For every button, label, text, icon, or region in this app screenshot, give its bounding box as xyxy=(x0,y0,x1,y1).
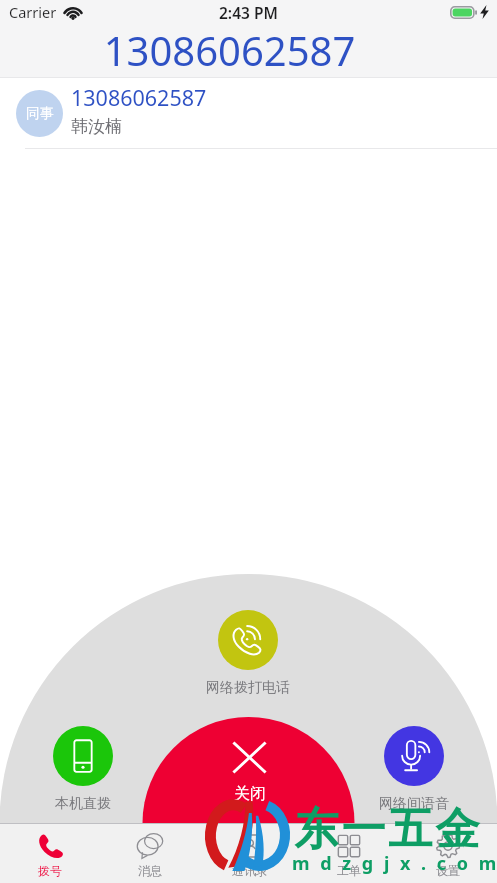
staticText: 设置 xyxy=(436,863,460,878)
staticText: 关闭 xyxy=(234,784,266,804)
button[interactable]: 同事 xyxy=(0,78,497,149)
staticText: 本机直拨 xyxy=(55,795,111,813)
staticText: 13086062587 xyxy=(71,83,207,112)
staticText: 网络间语音 xyxy=(379,795,449,813)
staticText: 东一五金 xyxy=(293,802,481,857)
button[interactable]: 设置 xyxy=(398,824,497,883)
staticText: 工单 xyxy=(337,863,361,878)
button[interactable]: 关闭 xyxy=(204,742,294,808)
button[interactable]: 工单 xyxy=(299,824,398,883)
staticText: 拨号 xyxy=(38,863,62,878)
button[interactable]: 消息 xyxy=(100,824,200,883)
button[interactable]: 网络间语音 xyxy=(362,726,466,813)
staticText: 通讯录 xyxy=(232,863,268,878)
staticText: 2:43 PM xyxy=(219,2,278,23)
staticText: 同事 xyxy=(26,105,54,123)
staticText: 13086062587 xyxy=(0,23,478,77)
staticText: 消息 xyxy=(138,863,162,878)
staticText: Carrier xyxy=(9,2,57,22)
staticText: 网络拨打电话 xyxy=(206,679,290,697)
button[interactable]: 通讯录 xyxy=(200,824,299,883)
button[interactable]: 拨号 xyxy=(0,824,100,883)
staticText: 韩汝楠 xyxy=(71,116,122,137)
button[interactable]: 网络拨打电话 xyxy=(196,610,300,697)
button[interactable]: 本机直拨 xyxy=(31,726,135,813)
staticText: m d z g j x . c o m xyxy=(292,851,497,876)
